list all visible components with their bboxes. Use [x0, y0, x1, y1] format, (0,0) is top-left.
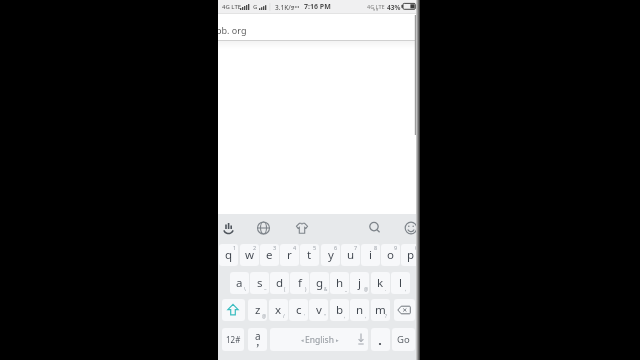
staticText: ,	[405, 286, 407, 292]
button[interactable]: z	[248, 299, 267, 321]
staticText: ◂	[301, 337, 304, 343]
staticText: a	[236, 275, 243, 291]
staticText: b	[336, 302, 344, 318]
button[interactable]: l	[391, 272, 410, 294]
button[interactable]: x	[269, 299, 288, 321]
staticText: @	[364, 286, 369, 292]
staticText: bb. org	[218, 24, 247, 36]
button[interactable]	[253, 217, 275, 239]
button[interactable]: r	[280, 244, 299, 266]
button[interactable]: t	[300, 244, 319, 266]
staticText: ,	[344, 313, 346, 319]
staticText: 5	[313, 244, 317, 251]
button[interactable]: i	[361, 244, 380, 266]
button[interactable]: f	[290, 272, 309, 294]
staticText: Go	[397, 333, 410, 346]
button[interactable]: s	[250, 272, 269, 294]
staticText: m	[375, 302, 386, 318]
button[interactable]	[394, 299, 415, 321]
button[interactable]	[222, 299, 245, 321]
staticText: 6	[334, 244, 338, 251]
staticText: q	[225, 247, 233, 263]
staticText: 4G LTE	[222, 3, 242, 11]
staticText: 12#	[226, 334, 241, 345]
button[interactable]	[248, 328, 267, 351]
button[interactable]: bb. org	[218, 20, 296, 40]
button[interactable]	[364, 217, 386, 239]
staticText: /	[283, 313, 285, 319]
staticText: 8	[374, 244, 378, 251]
button[interactable]: c	[289, 299, 308, 321]
button[interactable]: 12#	[222, 328, 244, 351]
staticText: 1	[233, 244, 237, 251]
staticText: c	[296, 302, 302, 318]
button[interactable]: v	[309, 299, 328, 321]
button[interactable]	[270, 328, 368, 351]
staticText: \	[244, 286, 246, 292]
staticText: 7:16 PM	[304, 2, 331, 12]
staticText: ,	[365, 313, 367, 319]
staticText: k	[377, 275, 384, 291]
staticText: g	[316, 275, 324, 291]
staticText: r	[287, 247, 292, 263]
button[interactable]: y	[321, 244, 340, 266]
button[interactable]: w	[240, 244, 259, 266]
button[interactable]: u	[341, 244, 360, 266]
staticText: d	[276, 275, 284, 291]
button[interactable]: k	[371, 272, 390, 294]
button[interactable]: Go	[392, 328, 415, 351]
staticText: ▸	[336, 337, 339, 343]
staticText: (	[284, 286, 286, 292]
staticText: i	[369, 247, 372, 263]
staticText: )	[305, 286, 307, 292]
staticText: e	[266, 247, 273, 263]
button[interactable]: e	[260, 244, 279, 266]
staticText: o	[387, 247, 394, 263]
staticText: ~	[264, 286, 267, 292]
button[interactable]: m	[371, 299, 390, 321]
staticText: @	[262, 313, 267, 319]
button[interactable]: a	[230, 272, 249, 294]
staticText: 3	[273, 244, 277, 251]
button[interactable]: h	[330, 272, 349, 294]
staticText: 4G LTE	[367, 3, 385, 10]
staticText: x	[275, 302, 282, 318]
staticText: _	[345, 286, 347, 292]
staticText: G	[253, 3, 258, 11]
button[interactable]: g	[310, 272, 329, 294]
button[interactable]: b	[330, 299, 349, 321]
button[interactable]: p	[401, 244, 420, 266]
staticText: z	[255, 302, 261, 318]
staticText: t	[307, 247, 312, 263]
button[interactable]: o	[381, 244, 400, 266]
staticText: "	[324, 313, 326, 319]
button[interactable]: j	[350, 272, 369, 294]
staticText: &	[324, 286, 328, 292]
button[interactable]	[371, 328, 390, 351]
staticText: n	[356, 302, 364, 318]
staticText: a	[255, 329, 261, 343]
staticText: .	[385, 286, 387, 292]
staticText: 9	[394, 244, 398, 251]
button[interactable]	[218, 217, 239, 239]
staticText: u	[347, 247, 355, 263]
staticText: y	[328, 247, 334, 263]
staticText: English	[305, 334, 334, 346]
staticText: '	[304, 313, 306, 319]
button[interactable]: q	[219, 244, 238, 266]
staticText: 2	[253, 244, 257, 251]
staticText: w	[245, 247, 255, 263]
staticText: 7	[354, 244, 358, 251]
button[interactable]	[400, 217, 420, 239]
staticText: s	[257, 275, 263, 291]
staticText: h	[336, 275, 344, 291]
button[interactable]: d	[270, 272, 289, 294]
staticText: f	[298, 275, 302, 291]
staticText: 43%	[387, 3, 401, 12]
button[interactable]: n	[350, 299, 369, 321]
button[interactable]	[291, 217, 313, 239]
staticText: p	[407, 247, 415, 263]
staticText: j	[358, 275, 361, 291]
staticText: 3.1K/s	[275, 3, 294, 12]
staticText: 4	[293, 244, 297, 251]
